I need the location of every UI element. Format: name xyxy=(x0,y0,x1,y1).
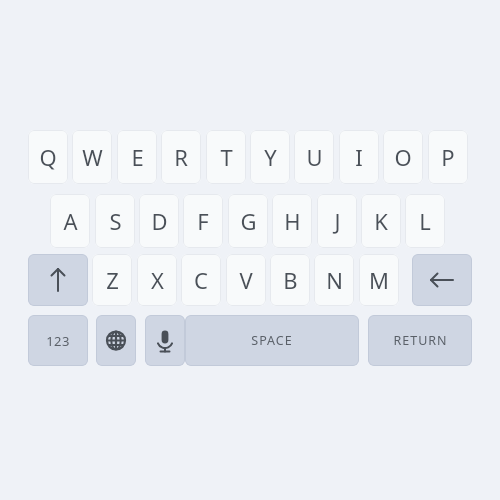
button[interactable]: V xyxy=(226,254,266,306)
staticText: Z xyxy=(106,265,119,295)
button[interactable]: K xyxy=(361,194,401,248)
staticText: S xyxy=(109,206,122,236)
staticText: D xyxy=(151,206,168,236)
staticText: A xyxy=(63,206,78,236)
button[interactable]: C xyxy=(181,254,221,306)
staticText: X xyxy=(151,265,164,295)
button[interactable]: Q xyxy=(28,130,68,184)
staticText: J xyxy=(334,206,341,236)
staticText: L xyxy=(419,206,431,236)
button[interactable]: N xyxy=(314,254,354,306)
staticText: F xyxy=(197,206,209,236)
button[interactable]: Backspace xyxy=(412,254,472,306)
staticText: Y xyxy=(264,142,277,172)
staticText: M xyxy=(369,265,389,295)
button[interactable]: E xyxy=(117,130,157,184)
button[interactable]: Change language xyxy=(96,315,136,366)
button[interactable]: RETURN xyxy=(368,315,472,366)
staticText: G xyxy=(240,206,257,236)
staticText: O xyxy=(394,142,412,172)
staticText: W xyxy=(82,142,103,172)
button[interactable]: Voice input xyxy=(145,315,185,366)
staticText: P xyxy=(441,142,455,172)
staticText: C xyxy=(194,265,208,295)
staticText: V xyxy=(239,265,253,295)
button[interactable]: I xyxy=(339,130,379,184)
button[interactable]: 123 xyxy=(28,315,88,366)
staticText: I xyxy=(355,142,363,172)
button[interactable]: H xyxy=(272,194,312,248)
staticText: RETURN xyxy=(393,332,448,349)
button[interactable]: L xyxy=(405,194,445,248)
button[interactable]: B xyxy=(270,254,310,306)
staticText: Q xyxy=(39,142,57,172)
button[interactable]: D xyxy=(139,194,179,248)
staticText: E xyxy=(131,142,144,172)
staticText: H xyxy=(284,206,301,236)
button[interactable]: O xyxy=(383,130,423,184)
button[interactable]: R xyxy=(161,130,201,184)
staticText: U xyxy=(306,142,323,172)
button[interactable]: S xyxy=(95,194,135,248)
button[interactable]: M xyxy=(359,254,399,306)
button[interactable]: Z xyxy=(92,254,132,306)
button[interactable]: X xyxy=(137,254,177,306)
button[interactable]: Y xyxy=(250,130,290,184)
staticText: R xyxy=(174,142,188,172)
button[interactable]: G xyxy=(228,194,268,248)
button[interactable]: Shift xyxy=(28,254,88,306)
button[interactable]: F xyxy=(183,194,223,248)
staticText: 123 xyxy=(46,332,70,350)
button[interactable]: A xyxy=(50,194,90,248)
button[interactable]: P xyxy=(428,130,468,184)
button[interactable]: J xyxy=(317,194,357,248)
button[interactable]: T xyxy=(206,130,246,184)
staticText: SPACE xyxy=(251,332,293,349)
button[interactable]: U xyxy=(294,130,334,184)
button[interactable]: SPACE xyxy=(185,315,359,366)
staticText: K xyxy=(374,206,388,236)
button[interactable]: W xyxy=(72,130,112,184)
staticText: N xyxy=(326,265,343,295)
staticText: T xyxy=(220,142,233,172)
staticText: B xyxy=(283,265,298,295)
